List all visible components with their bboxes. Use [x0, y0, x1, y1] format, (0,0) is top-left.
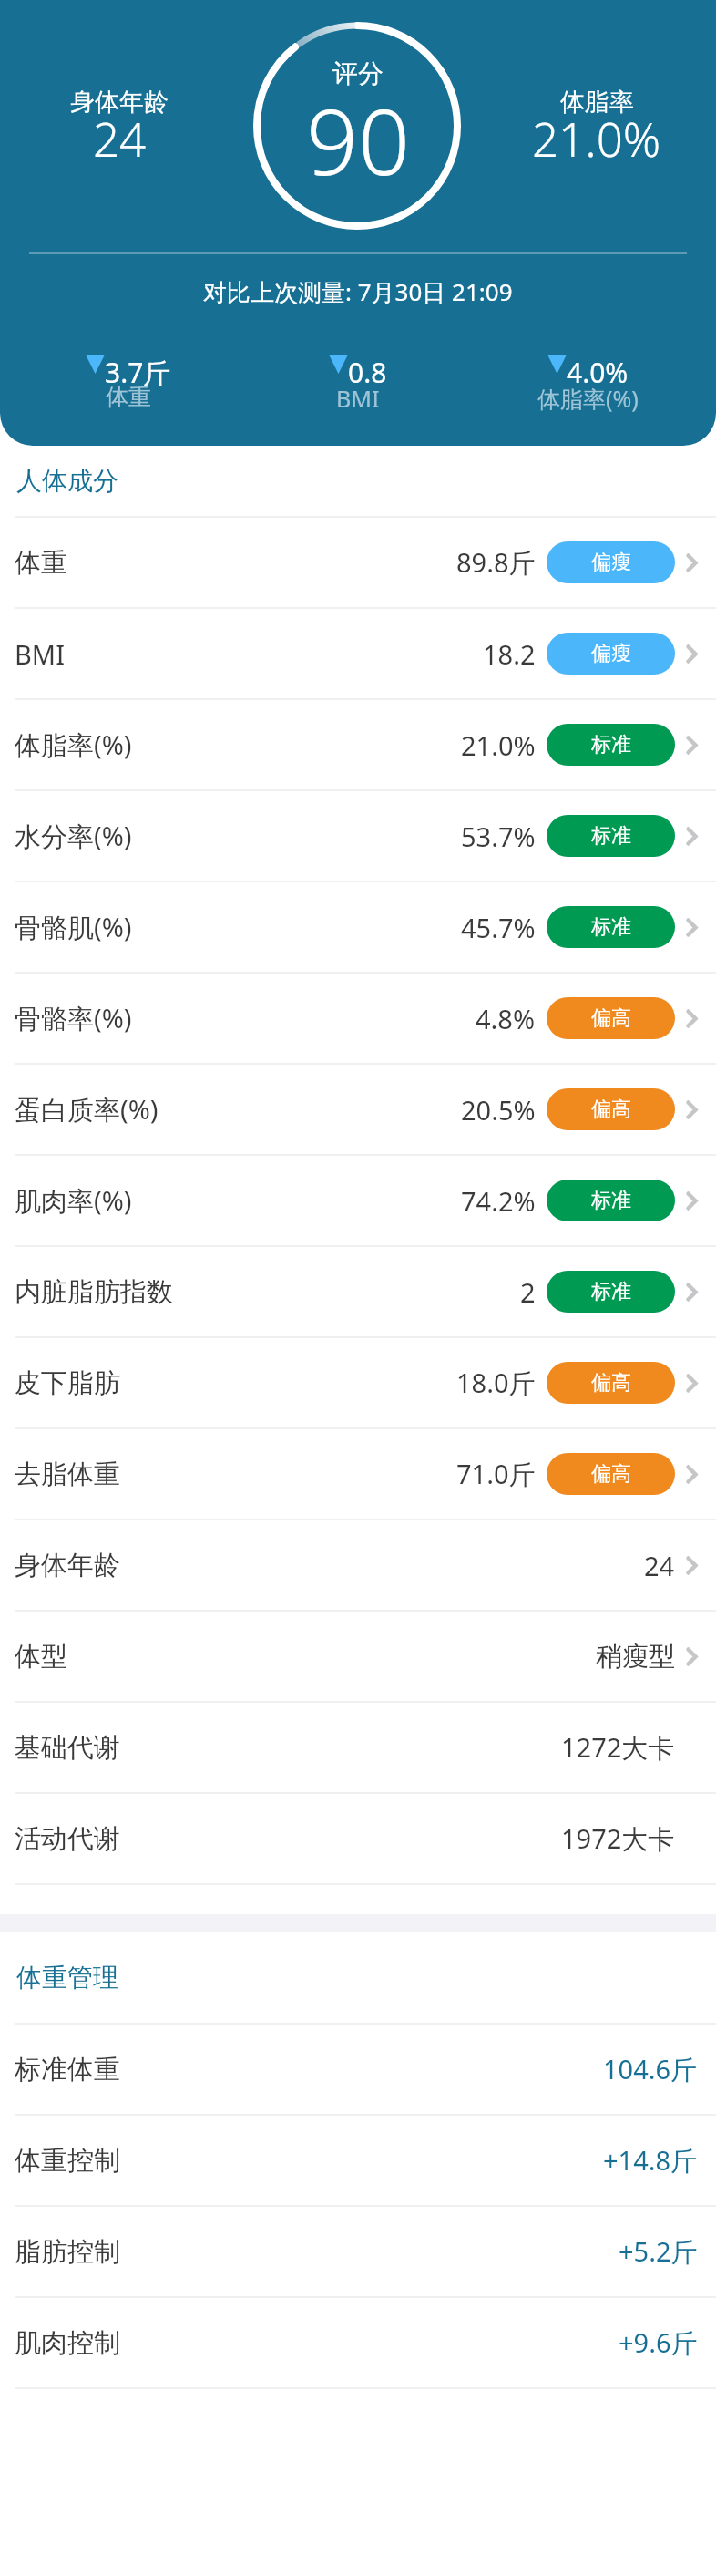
button[interactable]: 基础代谢: [0, 1703, 716, 1792]
staticText: 45.7%: [461, 910, 536, 945]
staticText: 肌肉控制: [15, 2326, 120, 2360]
staticText: 对比上次测量: 7月30日 21:09: [203, 275, 513, 308]
other: 详情: [686, 827, 698, 846]
staticText: 皮下脂肪: [15, 1366, 120, 1400]
staticText: 去脂体重: [15, 1458, 120, 1491]
button[interactable]: 活动代谢: [0, 1794, 716, 1883]
button[interactable]: 肌肉率(%): [0, 1156, 716, 1245]
staticText: 18.0斤: [456, 1365, 536, 1401]
button[interactable]: 骨骼率(%): [0, 974, 716, 1063]
staticText: 体型: [15, 1640, 67, 1674]
staticText: 104.6斤: [603, 2051, 698, 2087]
staticText: 0.8: [348, 354, 387, 391]
staticText: 体重: [15, 546, 67, 580]
staticText: 偏高: [591, 1370, 631, 1396]
staticText: 标准: [591, 1279, 631, 1304]
staticText: 21.0%: [461, 727, 536, 763]
other: 详情: [686, 736, 698, 755]
staticText: 体脂率(%): [15, 726, 132, 763]
staticText: BMI: [15, 636, 65, 672]
button[interactable]: 脂肪控制: [0, 2207, 716, 2296]
staticText: 水分率(%): [15, 818, 132, 854]
staticText: BMI: [336, 383, 380, 414]
button[interactable]: 内脏脂肪指数: [0, 1247, 716, 1336]
staticText: 标准体重: [15, 2053, 120, 2087]
staticText: 2: [520, 1274, 536, 1310]
other: 详情: [686, 1191, 698, 1211]
staticText: 体重: [106, 383, 151, 411]
staticText: 骨骼率(%): [15, 1000, 132, 1036]
button[interactable]: 骨骼肌(%): [0, 882, 716, 972]
staticText: 内脏脂肪指数: [15, 1275, 173, 1309]
staticText: 21.0%: [532, 107, 661, 170]
staticText: 89.8斤: [456, 544, 536, 581]
staticText: 20.5%: [461, 1092, 536, 1128]
staticText: +5.2斤: [619, 2233, 698, 2270]
staticText: 18.2: [483, 636, 536, 672]
button[interactable]: 蛋白质率(%): [0, 1065, 716, 1154]
staticText: 体脂率(%): [537, 383, 639, 414]
staticText: 偏高: [591, 1097, 631, 1122]
button[interactable]: 身体年龄: [0, 1520, 716, 1610]
staticText: 3.7斤: [105, 354, 171, 391]
staticText: 身体年龄: [15, 1549, 120, 1582]
staticText: 4.0%: [567, 354, 629, 391]
staticText: 24: [93, 107, 147, 170]
staticText: 体重控制: [15, 2144, 120, 2178]
staticText: 骨骼肌(%): [15, 909, 132, 945]
button[interactable]: 体脂率(%): [0, 700, 716, 789]
staticText: +9.6斤: [619, 2324, 698, 2361]
staticText: 偏高: [591, 1461, 631, 1487]
staticText: 脂肪控制: [15, 2235, 120, 2269]
button[interactable]: 皮下脂肪: [0, 1338, 716, 1427]
other: 详情: [686, 1283, 698, 1302]
button[interactable]: 标准体重: [0, 2025, 716, 2114]
other: 详情: [686, 1100, 698, 1119]
staticText: 偏瘦: [591, 550, 631, 575]
staticText: 53.7%: [461, 819, 536, 854]
button[interactable]: 体重控制: [0, 2116, 716, 2205]
staticText: 1972大卡: [561, 1820, 675, 1857]
button[interactable]: BMI: [0, 609, 716, 698]
staticText: 身体年龄: [70, 87, 169, 118]
staticText: 蛋白质率(%): [15, 1091, 159, 1128]
button[interactable]: 体型: [0, 1612, 716, 1701]
button[interactable]: 去脂体重: [0, 1429, 716, 1519]
other: 详情: [686, 1374, 698, 1393]
staticText: 标准: [591, 914, 631, 940]
staticText: 71.0斤: [456, 1456, 536, 1492]
staticText: 肌肉率(%): [15, 1182, 132, 1219]
staticText: 24: [644, 1548, 675, 1583]
staticText: +14.8斤: [603, 2142, 698, 2179]
staticText: 活动代谢: [15, 1822, 120, 1856]
other: 详情: [686, 553, 698, 572]
other: 详情: [686, 1009, 698, 1028]
other: 详情: [686, 644, 698, 664]
staticText: 4.8%: [476, 1001, 536, 1036]
staticText: 基础代谢: [15, 1731, 120, 1765]
staticText: 90: [306, 77, 411, 201]
staticText: 74.2%: [461, 1183, 536, 1219]
staticText: 体脂率: [560, 87, 634, 118]
other: 详情: [686, 1465, 698, 1484]
button[interactable]: 体重: [0, 518, 716, 607]
staticText: 标准: [591, 732, 631, 757]
other: 详情: [686, 1556, 698, 1575]
staticText: 评分: [332, 57, 384, 89]
other: 详情: [686, 1647, 698, 1666]
staticText: 标准: [591, 1188, 631, 1213]
staticText: 1272大卡: [561, 1729, 675, 1766]
button[interactable]: 水分率(%): [0, 791, 716, 881]
staticText: 人体成分: [16, 465, 118, 497]
other: 详情: [686, 918, 698, 937]
staticText: 偏高: [591, 1005, 631, 1031]
staticText: 偏瘦: [591, 641, 631, 666]
staticText: 标准: [591, 823, 631, 849]
button[interactable]: 肌肉控制: [0, 2298, 716, 2387]
staticText: 体重管理: [16, 1962, 118, 1994]
staticText: 稍瘦型: [596, 1640, 675, 1674]
